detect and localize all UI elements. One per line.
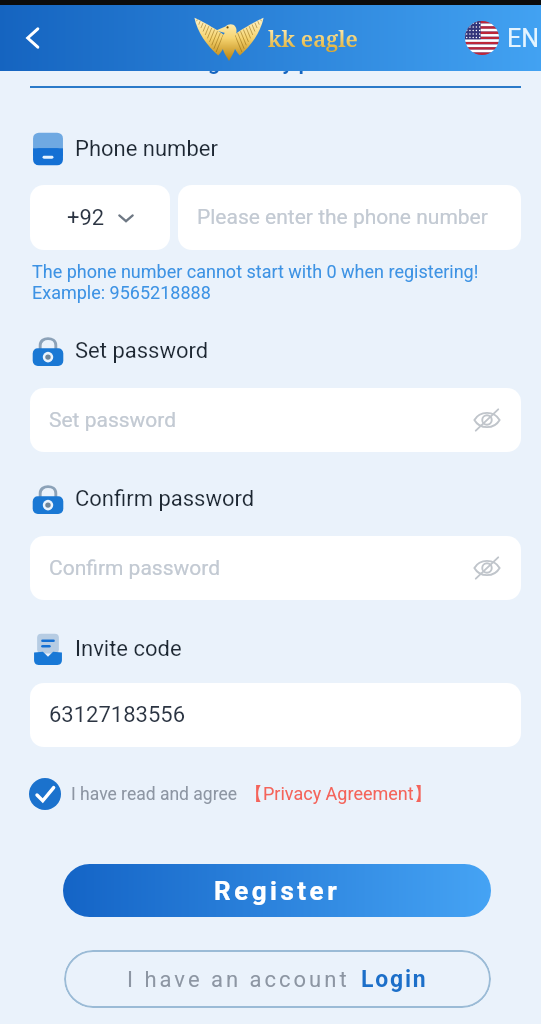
staticText: Register by phone <box>182 49 360 75</box>
staticText: Confirm password <box>75 486 255 512</box>
button[interactable]: I have an account <box>64 950 491 1008</box>
button[interactable]: 63127183556 <box>30 683 521 747</box>
staticText: I have an account <box>127 967 350 993</box>
button[interactable]: Show password <box>469 402 505 438</box>
button[interactable]: Confirm password <box>30 536 521 600</box>
staticText: kk eagle <box>268 23 358 53</box>
button[interactable]: +92 <box>30 185 170 250</box>
button[interactable]: Register <box>63 864 491 917</box>
staticText: 【Privacy Agreement】 <box>245 783 432 806</box>
staticText: I have read and agree <box>71 784 237 805</box>
button[interactable]: Please enter the phone number <box>178 185 521 250</box>
button[interactable]: Back <box>10 15 56 61</box>
staticText: Invite code <box>75 636 182 662</box>
staticText: 63127183556 <box>49 702 186 728</box>
staticText: Example: 9565218888 <box>32 282 211 303</box>
button[interactable]: Show password <box>469 550 505 586</box>
staticText: EN <box>507 24 540 53</box>
staticText: Please enter the phone number <box>197 205 488 230</box>
button[interactable]: EN <box>465 21 540 55</box>
staticText: The phone number cannot start with 0 whe… <box>32 261 479 282</box>
staticText: +92 <box>67 205 105 231</box>
staticText: Login <box>361 966 428 993</box>
button[interactable]: Register by phone <box>0 49 541 75</box>
staticText: Confirm password <box>49 556 221 581</box>
staticText: Set password <box>49 408 177 433</box>
staticText: Phone number <box>75 136 218 162</box>
staticText: Register <box>214 876 341 906</box>
button[interactable]: Set password <box>30 388 521 452</box>
button[interactable]: I have read and agree <box>29 776 432 812</box>
staticText: Set password <box>75 338 209 364</box>
